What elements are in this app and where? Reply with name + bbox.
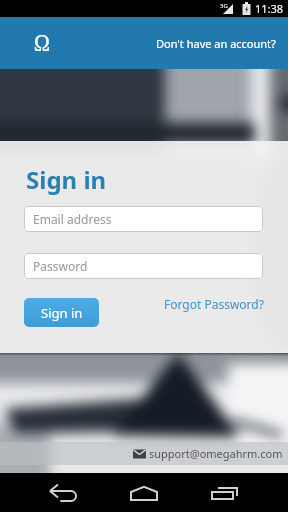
button[interactable]: Email address <box>24 206 263 232</box>
staticText: Email address <box>33 211 112 227</box>
button[interactable] <box>207 476 241 510</box>
button[interactable]: Don't have an account? <box>156 36 288 51</box>
button[interactable] <box>46 476 80 510</box>
staticText: Sign in <box>26 163 107 196</box>
staticText: 3G <box>220 2 228 10</box>
button[interactable]: Password <box>24 253 263 279</box>
button[interactable] <box>127 476 161 510</box>
button[interactable]: Forgot Password? <box>164 296 264 312</box>
staticText: Don't have an account? <box>156 36 276 51</box>
button[interactable]: Ω <box>34 29 50 58</box>
staticText: Forgot Password? <box>164 296 264 312</box>
staticText: Password <box>33 258 88 274</box>
staticText: Sign in <box>41 304 83 322</box>
staticText: 11:38 <box>255 1 284 16</box>
staticText: support@omegahrm.com <box>149 446 283 461</box>
button[interactable]: Sign in <box>24 298 99 327</box>
